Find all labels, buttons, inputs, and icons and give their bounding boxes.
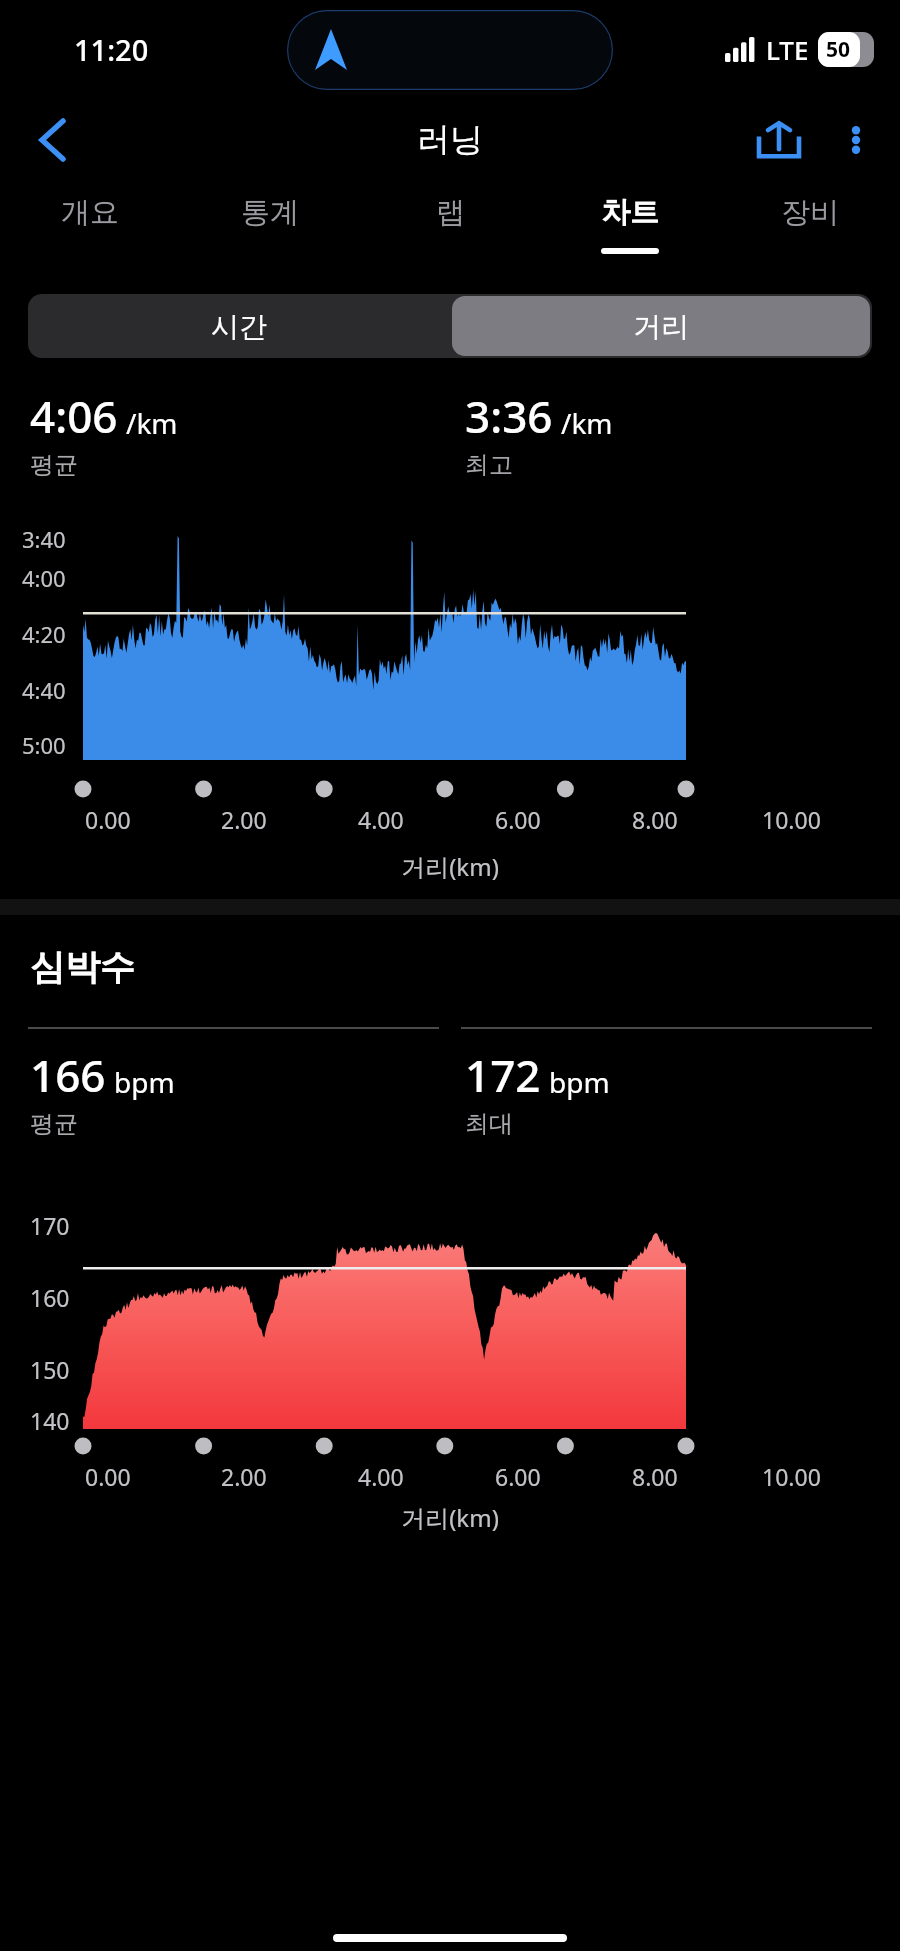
button[interactable]: 거리 xyxy=(452,296,870,356)
staticText: 평균 xyxy=(30,1109,78,1139)
staticText: 140 xyxy=(30,1405,70,1433)
staticText: /km xyxy=(126,404,178,442)
staticText: 172 xyxy=(465,1045,541,1105)
staticText: bpm xyxy=(549,1063,610,1101)
staticText: /km xyxy=(561,404,613,442)
staticText: 거리(km) xyxy=(0,1501,900,1534)
staticText: 거리(km) xyxy=(0,850,900,883)
staticText: 러닝 xyxy=(417,119,483,161)
staticText: 랩 xyxy=(436,194,465,231)
staticText: 166 xyxy=(30,1045,106,1105)
staticText: 50 xyxy=(826,35,851,64)
staticText: 2.00 xyxy=(221,1461,267,1492)
staticText: 0.00 xyxy=(85,804,131,835)
staticText: 11:20 xyxy=(74,30,149,69)
staticText: 160 xyxy=(30,1282,70,1313)
staticText: 최대 xyxy=(465,1109,513,1139)
button[interactable]: Back xyxy=(24,112,80,168)
staticText: 170 xyxy=(30,1210,70,1241)
staticText: 150 xyxy=(30,1354,70,1385)
staticText: 2.00 xyxy=(221,804,267,835)
staticText: 개요 xyxy=(61,194,119,231)
staticText: 6.00 xyxy=(495,1461,541,1492)
staticText: 통계 xyxy=(241,194,299,231)
staticText: 8.00 xyxy=(632,804,678,835)
staticText: 6.00 xyxy=(495,804,541,835)
staticText: 4:40 xyxy=(22,675,66,705)
staticText: 최고 xyxy=(465,450,513,480)
button[interactable]: More options xyxy=(834,118,878,162)
staticText: 거리 xyxy=(633,309,689,344)
staticText: 4.00 xyxy=(358,1461,404,1492)
staticText: 4.00 xyxy=(358,804,404,835)
staticText: 3:40 xyxy=(22,524,66,550)
staticText: 시간 xyxy=(211,309,267,344)
staticText: 3:36 xyxy=(465,386,553,446)
button[interactable]: 랩 xyxy=(360,181,540,273)
staticText: 4:20 xyxy=(22,619,66,649)
staticText: LTE xyxy=(766,32,809,67)
staticText: 4:06 xyxy=(30,386,118,446)
button[interactable]: 차트 xyxy=(540,181,720,273)
staticText: 평균 xyxy=(30,450,78,480)
button[interactable]: 장비 xyxy=(720,181,900,273)
staticText: 심박수 xyxy=(30,945,135,989)
staticText: 장비 xyxy=(781,194,839,231)
staticText: bpm xyxy=(114,1063,175,1101)
button[interactable]: 시간 xyxy=(28,294,450,358)
staticText: 8.00 xyxy=(632,1461,678,1492)
button[interactable]: 통계 xyxy=(180,181,360,273)
staticText: 5:00 xyxy=(22,730,66,760)
button[interactable]: Share xyxy=(750,111,808,169)
staticText: 차트 xyxy=(601,194,659,231)
button[interactable]: 개요 xyxy=(0,181,180,273)
staticText: 4:00 xyxy=(22,563,66,593)
staticText: 10.00 xyxy=(762,804,821,835)
staticText: 10.00 xyxy=(762,1461,821,1492)
staticText: 0.00 xyxy=(85,1461,131,1492)
